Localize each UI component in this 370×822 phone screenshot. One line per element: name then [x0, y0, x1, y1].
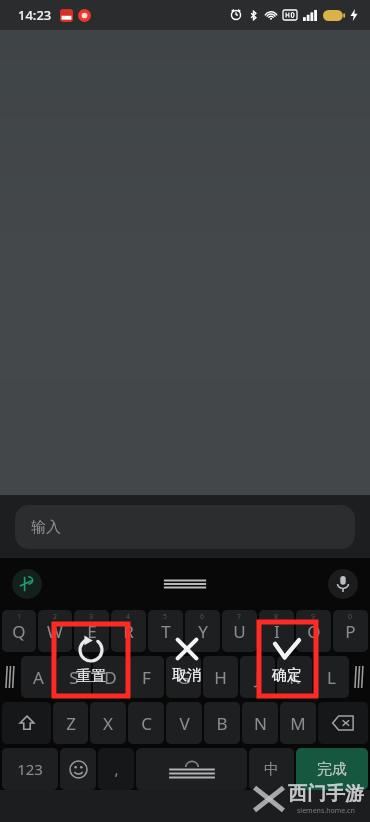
- staticText: R: [123, 620, 134, 643]
- button[interactable]: 语音输入: [328, 569, 358, 599]
- staticText: 9: [311, 612, 316, 622]
- staticText: F: [142, 666, 151, 689]
- staticText: D: [104, 666, 117, 689]
- staticText: N: [254, 712, 267, 735]
- button[interactable]: Z: [53, 702, 88, 744]
- button[interactable]: 空格: [136, 748, 247, 790]
- staticText: G: [177, 666, 190, 689]
- button[interactable]: Shift: [2, 702, 51, 744]
- button[interactable]: L: [314, 656, 349, 698]
- staticText: 西门手游: [288, 782, 364, 806]
- staticText: W: [47, 620, 63, 643]
- staticText: 123: [17, 759, 43, 779]
- button[interactable]: B: [204, 702, 240, 744]
- button[interactable]: A: [21, 656, 55, 698]
- button[interactable]: S: [57, 656, 91, 698]
- staticText: siemens.home.cn: [297, 806, 355, 816]
- button[interactable]: J: [240, 656, 275, 698]
- staticText: X: [103, 712, 113, 735]
- staticText: 0: [348, 612, 353, 622]
- staticText: H: [214, 666, 227, 689]
- button[interactable]: G: [166, 656, 201, 698]
- staticText: 输入: [31, 518, 61, 537]
- staticText: M: [290, 712, 306, 735]
- staticText: A: [33, 666, 44, 689]
- button[interactable]: Y: [185, 610, 220, 652]
- button[interactable]: W: [38, 610, 72, 652]
- button[interactable]: X: [90, 702, 126, 744]
- staticText: 3: [89, 612, 94, 622]
- button[interactable]: 输入: [15, 505, 355, 549]
- staticText: 2: [53, 612, 58, 622]
- staticText: V: [179, 712, 190, 735]
- button[interactable]: 中: [249, 748, 294, 790]
- button[interactable]: 取消: [156, 626, 218, 694]
- staticText: 完成: [317, 760, 347, 779]
- staticText: 中: [264, 760, 279, 779]
- staticText: 重置: [76, 667, 106, 686]
- staticText: B: [216, 712, 228, 735]
- staticText: 5: [163, 612, 168, 622]
- button[interactable]: E: [74, 610, 109, 652]
- button[interactable]: 表情: [60, 748, 96, 790]
- button[interactable]: 输入法标志: [12, 569, 42, 599]
- staticText: E: [87, 620, 97, 643]
- staticText: 7: [237, 612, 242, 622]
- staticText: S: [69, 666, 79, 689]
- staticText: 6: [200, 612, 205, 622]
- button[interactable]: 123: [2, 748, 58, 790]
- staticText: 8: [274, 612, 279, 622]
- button[interactable]: P: [333, 610, 368, 652]
- staticText: Z: [66, 712, 76, 735]
- button[interactable]: N: [242, 702, 278, 744]
- staticText: 确定: [272, 666, 302, 685]
- staticText: 4: [126, 612, 131, 622]
- staticText: U: [233, 620, 246, 643]
- button[interactable]: 完成: [296, 748, 368, 790]
- staticText: C: [141, 712, 152, 735]
- staticText: T: [161, 620, 171, 643]
- button[interactable]: 重置: [56, 626, 126, 694]
- staticText: J: [255, 666, 260, 689]
- button[interactable]: D: [93, 656, 127, 698]
- staticText: K: [289, 666, 300, 689]
- button[interactable]: ,: [98, 748, 134, 790]
- button[interactable]: Q: [2, 610, 36, 652]
- button[interactable]: C: [128, 702, 164, 744]
- staticText: O: [307, 620, 321, 643]
- button[interactable]: M: [280, 702, 316, 744]
- button[interactable]: R: [111, 610, 146, 652]
- staticText: P: [345, 620, 356, 643]
- button[interactable]: 删除: [318, 702, 368, 744]
- staticText: I: [274, 620, 280, 643]
- button[interactable]: V: [166, 702, 202, 744]
- staticText: 14:23: [18, 6, 52, 24]
- button[interactable]: O: [296, 610, 331, 652]
- button[interactable]: 拖动手柄: [161, 576, 209, 592]
- staticText: Q: [12, 620, 26, 643]
- button[interactable]: I: [259, 610, 294, 652]
- button[interactable]: K: [277, 656, 312, 698]
- button[interactable]: F: [129, 656, 164, 698]
- button[interactable]: 确定: [254, 626, 320, 694]
- staticText: 1: [17, 612, 22, 622]
- button[interactable]: T: [148, 610, 183, 652]
- button[interactable]: U: [222, 610, 257, 652]
- staticText: L: [327, 666, 336, 689]
- staticText: Y: [198, 620, 208, 643]
- button[interactable]: H: [203, 656, 238, 698]
- staticText: 取消: [172, 666, 202, 685]
- staticText: ,: [114, 759, 119, 779]
